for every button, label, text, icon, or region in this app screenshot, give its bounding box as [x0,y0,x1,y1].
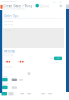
staticText: Docs [52,1,56,3]
button[interactable]: Save [1,92,7,95]
button[interactable]: Cancel [8,92,14,95]
staticText: Order Tips [4,14,18,18]
staticText: enter a value [4,24,13,26]
staticText: Val [4,61,6,63]
staticText: Device name [4,20,13,22]
staticText: Dashboard / Devices [2,1,17,2]
staticText: Create Device / Thing [3,4,32,8]
button[interactable]: Gateway on [2,78,8,81]
staticText: Meta tag [4,49,15,53]
staticText: Gateway [3,75,9,77]
staticText: reset [54,62,58,63]
button[interactable]: Add [54,57,62,60]
staticText: label [50,58,53,59]
staticText: Help [58,1,61,3]
staticText: Val [17,61,19,63]
staticText: Preview [5,29,11,31]
staticText: Add [56,57,59,59]
staticText: Secure [3,83,9,85]
staticText: Online [40,5,50,8]
button[interactable]: Secure on [2,86,8,89]
